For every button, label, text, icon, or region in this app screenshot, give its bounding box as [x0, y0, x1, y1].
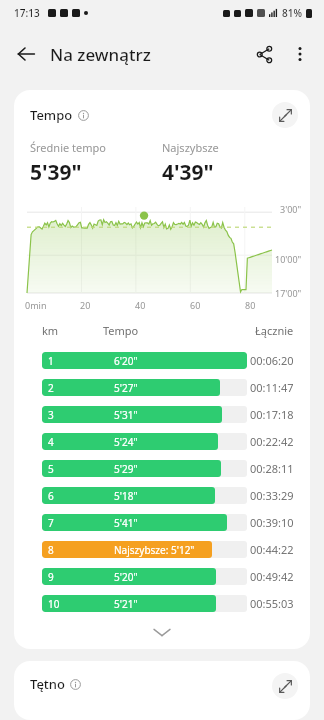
staticText: 8 — [48, 543, 54, 557]
button[interactable]: 9 — [14, 563, 310, 590]
staticText: 00:49:42 — [250, 569, 294, 584]
staticText: 5'21" — [114, 597, 138, 611]
staticText: 7 — [48, 516, 54, 530]
staticText: 1 — [48, 354, 54, 368]
staticText: 40 — [135, 299, 146, 311]
button[interactable]: Tempo — [30, 106, 89, 124]
button[interactable]: Share — [246, 36, 282, 72]
staticText: 5'31" — [114, 408, 138, 422]
button[interactable]: 3 — [14, 401, 310, 428]
staticText: 10'00" — [275, 253, 302, 265]
staticText: 5'41" — [114, 516, 138, 530]
staticText: 3'00" — [280, 203, 302, 215]
staticText: 00:06:20 — [250, 353, 294, 368]
staticText: 5'24" — [114, 435, 138, 449]
button[interactable]: 7 — [14, 509, 310, 536]
button[interactable]: 5 — [14, 455, 310, 482]
staticText: 5'39" — [30, 158, 82, 187]
staticText: Najszybsze: 5'12" — [114, 543, 195, 557]
staticText: 0min — [25, 299, 47, 311]
staticText: Tętno — [30, 675, 65, 693]
button[interactable]: 10 — [14, 590, 310, 617]
button[interactable]: Expand — [272, 673, 298, 699]
button[interactable]: Expand — [272, 102, 298, 128]
staticText: 10 — [48, 597, 60, 611]
staticText: km — [42, 323, 59, 338]
staticText: 5'20" — [114, 570, 138, 584]
button[interactable]: Back — [8, 36, 44, 72]
staticText: 5'18" — [114, 489, 138, 503]
button[interactable]: 8 — [14, 536, 310, 563]
button[interactable]: Tętno — [30, 675, 81, 693]
staticText: 00:11:47 — [250, 380, 294, 395]
button[interactable]: 6 — [14, 482, 310, 509]
staticText: Tempo — [30, 106, 73, 124]
staticText: 17:13 — [14, 6, 40, 20]
staticText: 80 — [245, 299, 256, 311]
staticText: Tempo — [103, 323, 139, 338]
staticText: 00:39:10 — [250, 515, 294, 530]
staticText: 00:17:18 — [250, 407, 294, 422]
button[interactable]: More options — [282, 36, 318, 72]
staticText: Łącznie — [255, 323, 294, 338]
staticText: 4 — [48, 435, 54, 449]
staticText: Średnie tempo — [30, 140, 106, 155]
staticText: 17'00" — [275, 287, 302, 299]
button[interactable]: 4 — [14, 428, 310, 455]
staticText: Na zewnątrz — [50, 43, 151, 66]
staticText: 4'39" — [162, 158, 214, 187]
staticText: 00:44:22 — [250, 542, 294, 557]
staticText: 5'29" — [114, 462, 138, 476]
staticText: Najszybsze — [162, 140, 219, 155]
button[interactable]: 1 — [14, 347, 310, 374]
staticText: 00:33:29 — [250, 488, 294, 503]
staticText: 81% — [282, 6, 302, 20]
staticText: 5 — [48, 462, 54, 476]
staticText: 00:22:42 — [250, 434, 294, 449]
staticText: 5'27" — [114, 381, 138, 395]
staticText: 3 — [48, 408, 54, 422]
button[interactable]: 2 — [14, 374, 310, 401]
staticText: 20 — [80, 299, 91, 311]
button[interactable]: Show more — [14, 621, 310, 643]
staticText: 9 — [48, 570, 54, 584]
staticText: 00:28:11 — [250, 461, 294, 476]
staticText: 00:55:03 — [250, 596, 294, 611]
staticText: 2 — [48, 381, 54, 395]
staticText: 6'20" — [114, 354, 138, 368]
staticText: 60 — [190, 299, 201, 311]
staticText: 6 — [48, 489, 54, 503]
